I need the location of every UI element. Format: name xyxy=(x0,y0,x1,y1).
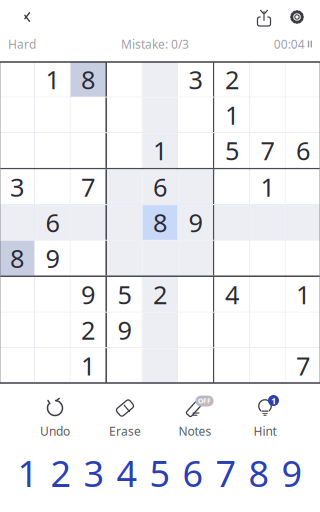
button[interactable] xyxy=(0,133,34,168)
staticText: 5 xyxy=(225,134,239,167)
button[interactable]: 2 xyxy=(143,277,177,312)
button[interactable]: Share xyxy=(248,1,280,33)
button[interactable]: 9 xyxy=(178,205,213,240)
button[interactable]: 8 xyxy=(71,62,105,97)
button[interactable]: 9 xyxy=(71,277,105,312)
button[interactable] xyxy=(286,241,320,275)
button[interactable]: 1 xyxy=(71,348,105,383)
button[interactable]: 2 xyxy=(44,455,77,491)
staticText: 6 xyxy=(296,134,310,167)
button[interactable]: 4 xyxy=(215,277,249,312)
button[interactable] xyxy=(215,241,249,275)
button[interactable] xyxy=(0,277,34,312)
button[interactable] xyxy=(0,348,34,383)
button[interactable]: 3 xyxy=(178,62,213,97)
button[interactable] xyxy=(250,348,285,383)
button[interactable]: 7 xyxy=(71,169,105,204)
button[interactable] xyxy=(107,348,142,383)
button[interactable] xyxy=(143,348,177,383)
button[interactable] xyxy=(71,241,105,275)
button[interactable]: 1 xyxy=(215,98,249,132)
button[interactable]: Back xyxy=(6,1,42,33)
button[interactable]: Erase xyxy=(90,397,160,439)
button[interactable]: 8 xyxy=(0,241,34,275)
button[interactable] xyxy=(0,313,34,347)
button[interactable] xyxy=(143,241,177,275)
button[interactable] xyxy=(286,169,320,204)
button[interactable] xyxy=(107,62,142,97)
button[interactable]: Pause xyxy=(274,36,312,52)
button[interactable] xyxy=(143,62,177,97)
button[interactable]: 7 xyxy=(286,348,320,383)
button[interactable] xyxy=(286,98,320,132)
button[interactable]: 9 xyxy=(275,455,308,491)
button[interactable]: 7 xyxy=(209,455,242,491)
button[interactable]: 9 xyxy=(107,313,142,347)
button[interactable] xyxy=(215,348,249,383)
button[interactable]: OFF xyxy=(160,397,230,439)
button[interactable] xyxy=(0,98,34,132)
button[interactable] xyxy=(250,62,285,97)
button[interactable] xyxy=(35,348,70,383)
button[interactable] xyxy=(286,205,320,240)
button[interactable] xyxy=(71,205,105,240)
button[interactable]: 1 xyxy=(35,62,70,97)
button[interactable] xyxy=(250,241,285,275)
button[interactable]: 1 xyxy=(11,455,44,491)
button[interactable]: 1 xyxy=(143,133,177,168)
button[interactable] xyxy=(286,313,320,347)
button[interactable]: 5 xyxy=(215,133,249,168)
button[interactable]: 1 xyxy=(250,169,285,204)
button[interactable]: 3 xyxy=(0,169,34,204)
button[interactable]: 6 xyxy=(286,133,320,168)
button[interactable] xyxy=(178,241,213,275)
button[interactable]: 7 xyxy=(250,133,285,168)
button[interactable]: 5 xyxy=(107,277,142,312)
button[interactable]: Settings xyxy=(280,1,314,33)
button[interactable]: 1 xyxy=(286,277,320,312)
button[interactable]: Undo xyxy=(20,397,90,439)
button[interactable]: 2 xyxy=(215,62,249,97)
button[interactable]: 6 xyxy=(176,455,209,491)
button[interactable]: 5 xyxy=(143,455,176,491)
button[interactable]: 8 xyxy=(242,455,275,491)
button[interactable]: 4 xyxy=(110,455,143,491)
button[interactable]: 1 xyxy=(230,397,300,439)
button[interactable] xyxy=(71,133,105,168)
button[interactable] xyxy=(0,205,34,240)
button[interactable]: 6 xyxy=(143,169,177,204)
button[interactable]: 9 xyxy=(35,241,70,275)
button[interactable]: 8 xyxy=(143,205,177,240)
button[interactable] xyxy=(0,62,34,97)
button[interactable] xyxy=(71,98,105,132)
button[interactable]: 3 xyxy=(77,455,110,491)
button[interactable]: 2 xyxy=(71,313,105,347)
button[interactable] xyxy=(178,348,213,383)
button[interactable]: 6 xyxy=(35,205,70,240)
button[interactable] xyxy=(286,62,320,97)
button[interactable] xyxy=(107,241,142,275)
